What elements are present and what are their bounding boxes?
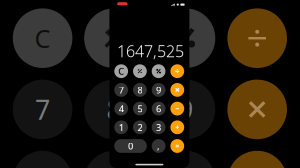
button[interactable]	[156, 8, 215, 68]
staticText: 1	[119, 121, 124, 133]
staticText: C	[118, 65, 124, 77]
staticText: 6	[156, 102, 161, 115]
button[interactable]	[13, 8, 72, 68]
button[interactable]: 5	[133, 102, 147, 115]
staticText: 9	[156, 84, 161, 96]
button[interactable]: Decimal	[152, 139, 165, 153]
staticText: ,	[157, 140, 160, 152]
button[interactable]: 8	[133, 83, 147, 97]
staticText: 8	[106, 92, 121, 127]
button[interactable]: 0	[114, 139, 147, 153]
button[interactable]	[84, 151, 144, 168]
staticText: 5	[106, 163, 121, 168]
button[interactable]	[227, 80, 287, 139]
staticText: 6	[178, 163, 193, 168]
button[interactable]: Equals	[170, 139, 184, 153]
staticText: 9	[178, 92, 193, 127]
staticText: 0	[128, 140, 133, 152]
staticText: 5	[137, 102, 142, 115]
button[interactable]	[84, 80, 144, 139]
button[interactable]	[156, 80, 215, 139]
button[interactable]	[227, 8, 287, 68]
button[interactable]: 4	[114, 102, 128, 115]
button[interactable]: Add	[170, 120, 184, 134]
button[interactable]: 3	[152, 120, 165, 134]
staticText: C	[35, 21, 51, 55]
button[interactable]: 1	[114, 120, 128, 134]
button[interactable]: Plus minus	[133, 64, 147, 78]
staticText: 4	[119, 102, 124, 115]
button[interactable]: Multiply	[170, 83, 184, 97]
button[interactable]	[156, 151, 215, 168]
button[interactable]: 2	[133, 120, 147, 134]
staticText: 7	[119, 84, 124, 96]
staticText: 3	[156, 121, 161, 133]
staticText: 1647,525	[117, 40, 184, 62]
staticText: 7	[35, 92, 50, 127]
button[interactable]	[13, 80, 72, 139]
button[interactable]: Percent	[152, 64, 165, 78]
button[interactable]: Divide	[170, 64, 184, 78]
button[interactable]	[84, 8, 144, 68]
staticText: 8	[137, 84, 142, 96]
button[interactable]	[227, 151, 287, 168]
button[interactable]: 7	[114, 83, 128, 97]
button[interactable]: Clear	[114, 64, 128, 78]
staticText: 2	[137, 121, 142, 133]
button[interactable]: 9	[152, 83, 165, 97]
button[interactable]: 6	[152, 102, 165, 115]
button[interactable]: Subtract	[170, 102, 184, 115]
button[interactable]	[13, 151, 72, 168]
